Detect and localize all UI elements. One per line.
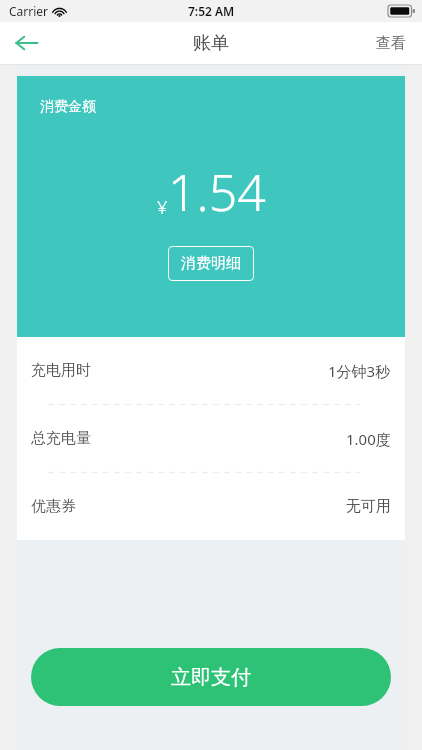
staticText: 消费明细 bbox=[181, 254, 241, 273]
button[interactable]: 充电用时 bbox=[17, 337, 405, 404]
staticText: 1.54 bbox=[168, 158, 266, 226]
staticText: 1.00度 bbox=[346, 429, 391, 449]
staticText: Carrier bbox=[9, 3, 49, 19]
staticText: 1分钟3秒 bbox=[328, 361, 391, 381]
staticText: 优惠券 bbox=[31, 497, 76, 516]
staticText: 充电用时 bbox=[31, 361, 91, 380]
button[interactable]: 查看 bbox=[360, 22, 422, 64]
staticText: 7:52 AM bbox=[188, 3, 235, 19]
button[interactable]: 消费明细 bbox=[168, 246, 254, 281]
button[interactable]: 总充电量 bbox=[17, 405, 405, 472]
staticText: 账单 bbox=[193, 32, 229, 55]
button[interactable]: Back bbox=[0, 22, 52, 64]
staticText: 无可用 bbox=[346, 497, 391, 516]
staticText: 总充电量 bbox=[31, 429, 91, 448]
staticText: 立即支付 bbox=[171, 665, 251, 690]
staticText: 查看 bbox=[376, 34, 406, 53]
button[interactable]: 立即支付 bbox=[31, 648, 391, 706]
button[interactable]: 优惠券 bbox=[17, 473, 405, 540]
staticText: ¥ bbox=[157, 195, 168, 220]
staticText: 消费金额 bbox=[40, 98, 96, 116]
